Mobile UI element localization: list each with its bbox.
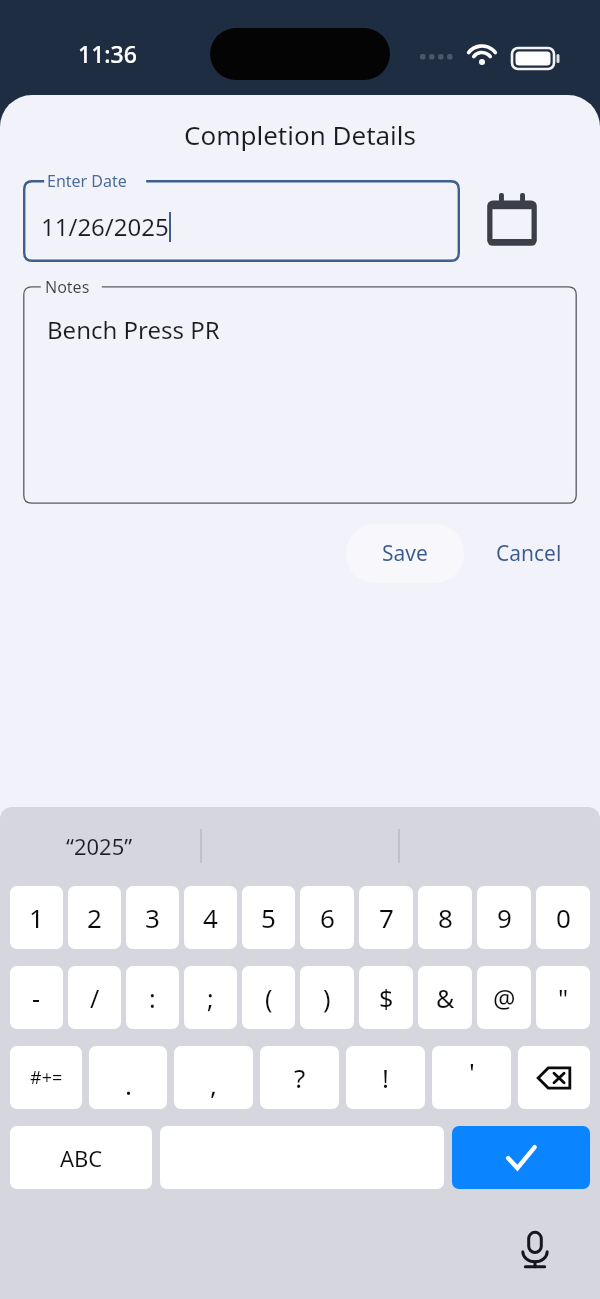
button[interactable]: “2025”	[66, 831, 133, 861]
button[interactable]: ABC	[10, 1126, 152, 1189]
button[interactable]: 2	[68, 886, 121, 949]
button[interactable]: )	[300, 966, 354, 1029]
staticText: /	[90, 981, 100, 1015]
staticText: $	[379, 981, 394, 1015]
staticText: 7	[379, 900, 394, 935]
staticText: 4	[203, 900, 218, 935]
button[interactable]: .	[89, 1046, 167, 1109]
button[interactable]: /	[68, 966, 121, 1029]
staticText: Bench Press PR	[47, 313, 220, 346]
button[interactable]: &	[418, 966, 472, 1029]
button[interactable]: 8	[418, 886, 472, 949]
staticText: :	[149, 981, 156, 1015]
button[interactable]: Save	[346, 524, 464, 583]
button[interactable]: $	[359, 966, 413, 1029]
button[interactable]: 5	[242, 886, 295, 949]
button[interactable]: 3	[126, 886, 179, 949]
button[interactable]: -	[10, 966, 63, 1029]
staticText: #+=	[30, 1065, 63, 1090]
staticText: 1	[29, 900, 44, 935]
staticText: 9	[497, 900, 512, 935]
staticText: 6	[320, 900, 335, 935]
staticText: Save	[382, 539, 428, 568]
staticText: !	[382, 1060, 389, 1095]
staticText: &	[436, 981, 455, 1015]
button[interactable]: Open date picker	[480, 189, 544, 253]
staticText: Completion Details	[0, 117, 600, 152]
button[interactable]: ;	[184, 966, 237, 1029]
staticText: 8	[438, 900, 453, 935]
staticText: 11:36	[78, 38, 137, 69]
button[interactable]: Enter Date	[23, 180, 460, 262]
staticText: Notes	[45, 276, 90, 298]
button[interactable]: !	[346, 1046, 425, 1109]
button[interactable]: 9	[477, 886, 531, 949]
button[interactable]: Done	[452, 1126, 590, 1189]
button[interactable]: Voice input	[508, 1223, 562, 1277]
button[interactable]: @	[477, 966, 531, 1029]
button[interactable]: 0	[536, 886, 590, 949]
staticText: ?	[294, 1060, 306, 1095]
button[interactable]: 7	[359, 886, 413, 949]
button[interactable]: Notes	[23, 286, 577, 504]
button[interactable]: 1	[10, 886, 63, 949]
staticText: 11/26/2025	[41, 210, 169, 243]
staticText: )	[323, 981, 331, 1015]
staticText: ,	[210, 1067, 217, 1102]
button[interactable]: 4	[184, 886, 237, 949]
button[interactable]: '	[432, 1046, 511, 1109]
staticText: ;	[207, 981, 214, 1015]
staticText: 0	[556, 900, 571, 935]
button[interactable]: (	[242, 966, 295, 1029]
staticText: @	[493, 981, 516, 1015]
staticText: Enter Date	[47, 170, 127, 192]
button[interactable]: #+=	[10, 1046, 82, 1109]
button[interactable]: Cancel	[486, 524, 572, 583]
staticText: "	[558, 981, 569, 1015]
staticText: ABC	[60, 1143, 103, 1173]
button[interactable]: "	[536, 966, 590, 1029]
staticText: 3	[145, 900, 160, 935]
button[interactable]: 6	[300, 886, 354, 949]
button[interactable]: :	[126, 966, 179, 1029]
staticText: Cancel	[496, 539, 562, 568]
button[interactable]: ?	[260, 1046, 339, 1109]
staticText: .	[125, 1067, 132, 1102]
staticText: 5	[261, 900, 276, 935]
staticText: '	[469, 1054, 475, 1089]
button[interactable]: ,	[174, 1046, 253, 1109]
staticText: 2	[87, 900, 102, 935]
button[interactable]: Backspace	[518, 1046, 590, 1109]
staticText: -	[32, 981, 41, 1015]
staticText: (	[265, 981, 273, 1015]
